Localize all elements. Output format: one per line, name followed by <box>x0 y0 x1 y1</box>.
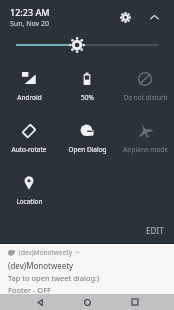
staticText: (dev)Monotweety <box>19 248 72 257</box>
button[interactable]: Back <box>32 294 48 310</box>
staticText: Tap to open tweet dialog:) <box>8 273 100 283</box>
staticText: Android <box>17 93 42 102</box>
button[interactable]: Do not disturb <box>116 64 174 110</box>
staticText: Sun, Nov 20 <box>10 19 49 29</box>
staticText: Open Dialog <box>68 145 107 154</box>
button[interactable]: Brightness <box>16 34 158 56</box>
button[interactable]: Open Dialog <box>58 116 116 162</box>
staticText: 12:23 AM <box>10 6 50 18</box>
staticText: Do not disturb <box>123 93 168 102</box>
staticText: 50% <box>81 93 94 102</box>
staticText: Footer - OFF <box>8 285 51 294</box>
button[interactable]: Location <box>0 168 58 214</box>
staticText: Auto-rotate <box>11 145 47 154</box>
button[interactable]: Auto-rotate <box>0 116 58 162</box>
button[interactable]: Settings <box>112 4 138 30</box>
button[interactable]: Collapse <box>142 5 166 29</box>
button[interactable]: Airplane mode <box>116 116 174 162</box>
button[interactable]: Android <box>0 64 58 110</box>
staticText: (dev)Monotweety <box>8 260 74 271</box>
button[interactable]: Recents <box>127 294 143 310</box>
button[interactable]: Home <box>79 294 95 310</box>
staticText: Location <box>16 197 43 206</box>
button[interactable]: 50% <box>58 64 116 110</box>
staticText: Airplane mode <box>123 145 168 154</box>
button[interactable]: EDIT <box>146 225 164 236</box>
staticText: EDIT <box>146 225 164 236</box>
button[interactable]: (dev)Monotweety <box>0 244 174 294</box>
